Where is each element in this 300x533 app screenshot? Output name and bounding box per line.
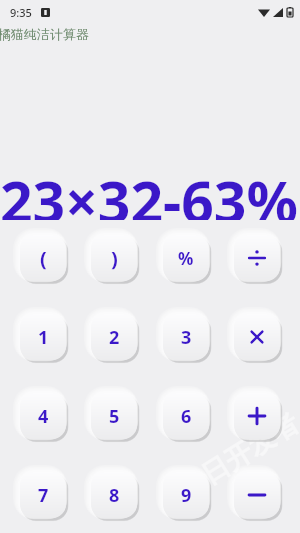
button[interactable]: 3 bbox=[155, 306, 217, 368]
button[interactable]: Multiply bbox=[226, 306, 288, 368]
button[interactable]: 7 bbox=[12, 464, 74, 526]
staticText: 4 bbox=[38, 404, 49, 429]
button[interactable]: 2 bbox=[83, 306, 145, 368]
staticText: ( bbox=[40, 245, 47, 272]
staticText: 3 bbox=[181, 325, 192, 350]
staticText: 5 bbox=[109, 404, 120, 429]
button[interactable]: 5 bbox=[83, 385, 145, 447]
staticText: ) bbox=[111, 245, 118, 272]
staticText: 7 bbox=[38, 483, 49, 508]
button[interactable]: 6 bbox=[155, 385, 217, 447]
staticText: 2 bbox=[109, 325, 120, 350]
staticText: 23×32-63%(1 bbox=[0, 162, 300, 220]
staticText: 1 bbox=[38, 325, 49, 350]
staticText: 日开发者 bbox=[195, 406, 300, 492]
button[interactable]: 8 bbox=[83, 464, 145, 526]
button[interactable]: Divide bbox=[226, 227, 288, 289]
staticText: % bbox=[178, 247, 194, 270]
button[interactable]: 9 bbox=[155, 464, 217, 526]
staticText: 9:35 bbox=[10, 5, 32, 20]
button[interactable]: 1 bbox=[12, 306, 74, 368]
button[interactable]: % bbox=[155, 227, 217, 289]
button[interactable]: ( bbox=[12, 227, 74, 289]
staticText: 8 bbox=[109, 483, 120, 508]
button[interactable]: Minus bbox=[226, 464, 288, 526]
staticText: 橘猫纯洁计算器 bbox=[0, 26, 89, 42]
button[interactable]: Plus bbox=[226, 385, 288, 447]
staticText: 9 bbox=[181, 483, 192, 508]
button[interactable]: ) bbox=[83, 227, 145, 289]
staticText: 6 bbox=[181, 404, 192, 429]
button[interactable]: 4 bbox=[12, 385, 74, 447]
